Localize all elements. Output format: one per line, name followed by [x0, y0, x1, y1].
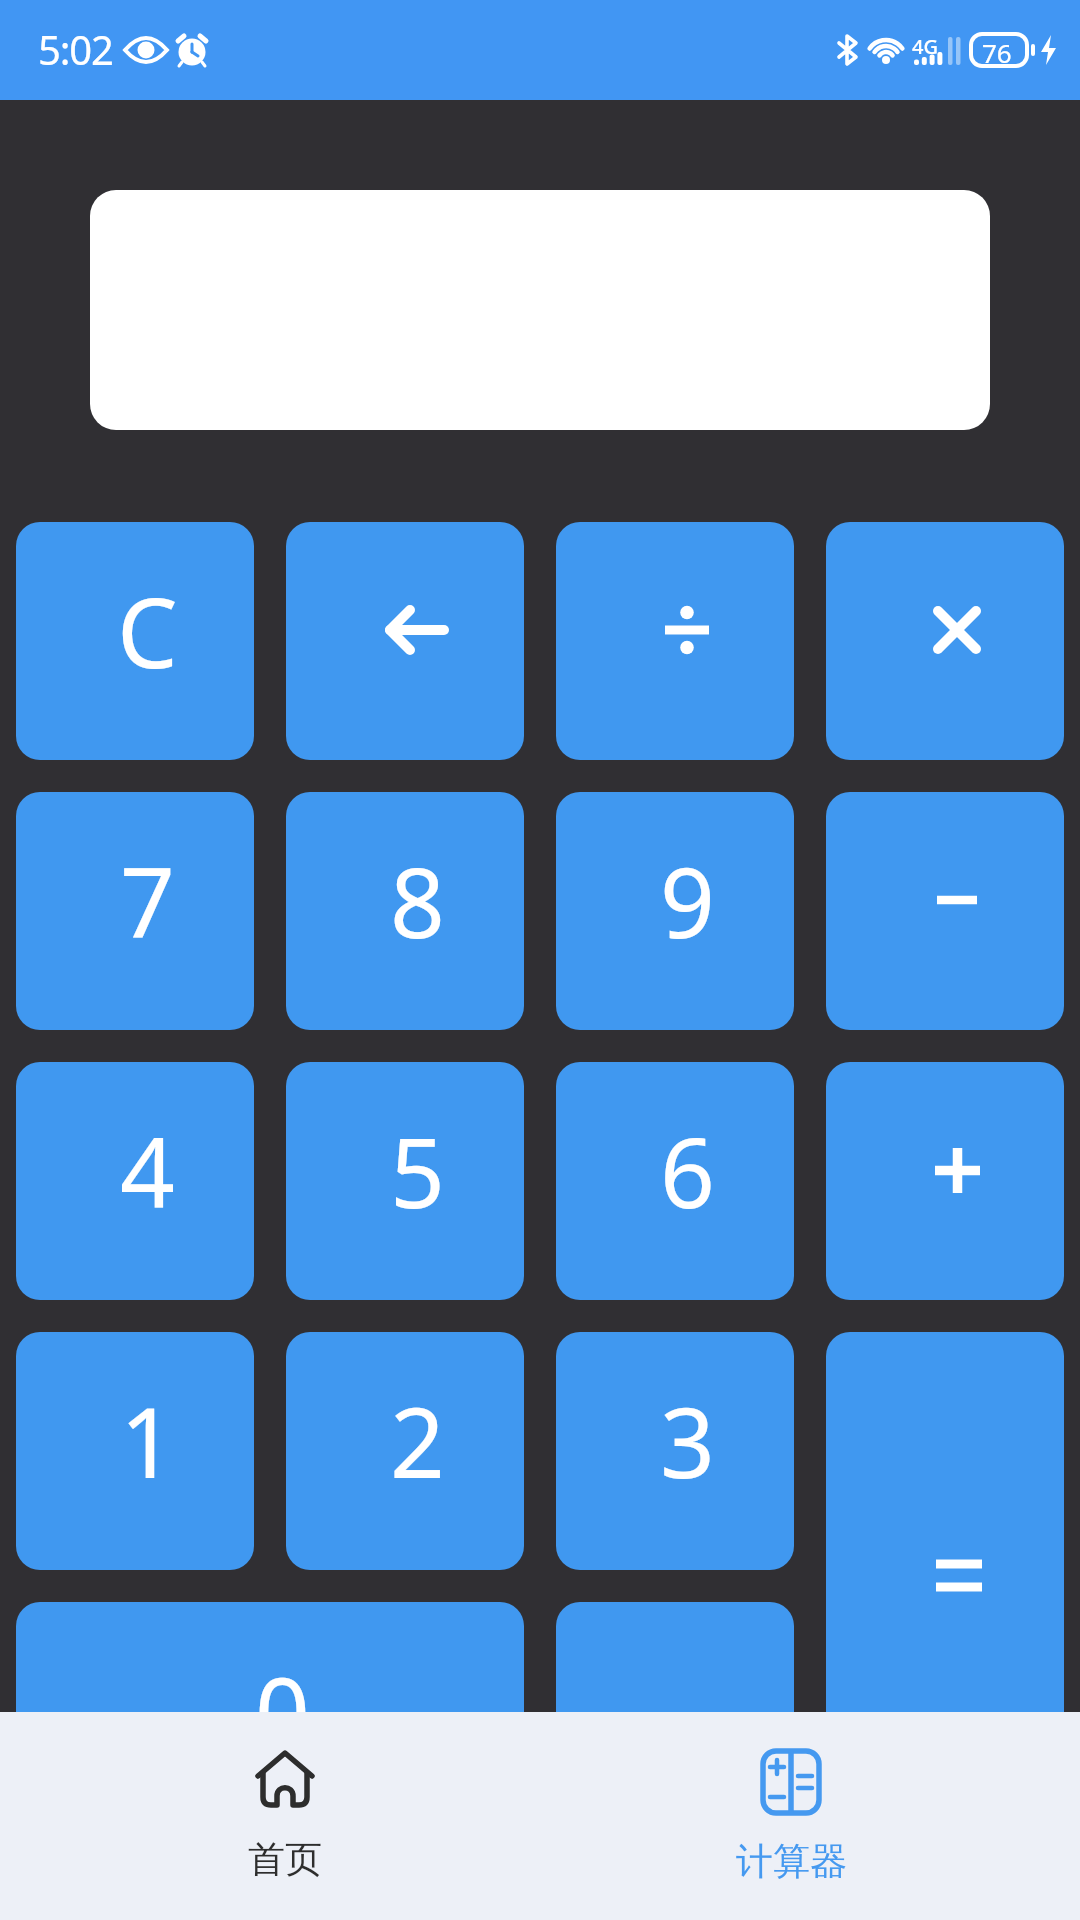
button[interactable]: 4	[16, 1062, 254, 1300]
button[interactable]	[826, 792, 1064, 1030]
button[interactable]: 7	[16, 792, 254, 1030]
button[interactable]	[826, 1062, 1064, 1300]
button[interactable]	[556, 522, 794, 760]
button[interactable]: 5	[286, 1062, 524, 1300]
staticText: 5	[390, 1105, 445, 1236]
staticText: 4G	[912, 33, 938, 60]
staticText: 1	[120, 1375, 175, 1506]
button[interactable]: 3	[556, 1332, 794, 1570]
button[interactable]: 8	[286, 792, 524, 1030]
staticText: 0	[255, 1645, 310, 1776]
staticText: 计算器	[736, 1838, 847, 1885]
staticText: 5:02	[38, 22, 113, 76]
button[interactable]	[826, 522, 1064, 760]
button[interactable]: 首页	[0, 1712, 540, 1920]
staticText: 6	[660, 1105, 715, 1236]
button[interactable]: 6	[556, 1062, 794, 1300]
staticText: C	[117, 565, 178, 696]
staticText: 2	[390, 1375, 445, 1506]
staticText: 7	[120, 835, 175, 966]
button[interactable]: 0	[16, 1602, 524, 1840]
button[interactable]	[286, 522, 524, 760]
button[interactable]: 9	[556, 792, 794, 1030]
button[interactable]: 2	[286, 1332, 524, 1570]
button[interactable]	[826, 1332, 1064, 1840]
staticText: 76	[982, 35, 1012, 70]
staticText: 首页	[248, 1836, 322, 1883]
staticText: .	[674, 1645, 700, 1776]
button[interactable]: C	[16, 522, 254, 760]
staticText: 8	[390, 835, 445, 966]
staticText: 9	[660, 835, 715, 966]
button[interactable]: 计算器	[540, 1712, 1080, 1920]
button[interactable]: 1	[16, 1332, 254, 1570]
button[interactable]: .	[556, 1602, 794, 1840]
staticText: 3	[660, 1375, 715, 1506]
staticText: 4	[120, 1105, 175, 1236]
